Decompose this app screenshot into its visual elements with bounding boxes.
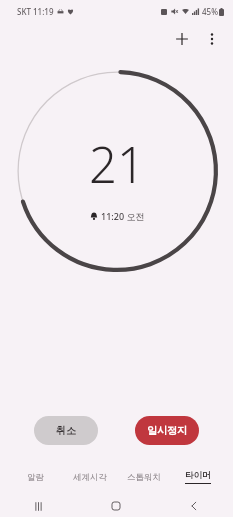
button[interactable]: 일시정지 xyxy=(135,416,199,445)
staticText: 일시정지 xyxy=(147,424,187,437)
button[interactable]: Back xyxy=(155,495,233,517)
button[interactable]: 알람 xyxy=(8,466,63,488)
button[interactable]: More options xyxy=(197,24,227,54)
button[interactable]: 스톱워치 xyxy=(117,466,171,488)
button[interactable]: 취소 xyxy=(34,416,98,445)
button[interactable]: Add timer xyxy=(167,24,197,54)
staticText: 스톱워치 xyxy=(127,472,161,483)
staticText: 11:20 오전 xyxy=(101,210,145,222)
staticText: 취소 xyxy=(56,424,76,437)
staticText: SKT 11:19 xyxy=(17,6,54,17)
staticText: 세계시각 xyxy=(73,472,107,483)
button[interactable]: Recent apps xyxy=(0,495,77,517)
staticText: 21 xyxy=(89,131,145,198)
staticText: 45% xyxy=(202,6,218,17)
button[interactable]: 타이머 xyxy=(171,466,225,488)
button[interactable]: Home xyxy=(77,495,155,517)
button[interactable]: 세계시각 xyxy=(63,466,117,488)
staticText: 알람 xyxy=(27,472,44,483)
staticText: 타이머 xyxy=(185,470,211,481)
